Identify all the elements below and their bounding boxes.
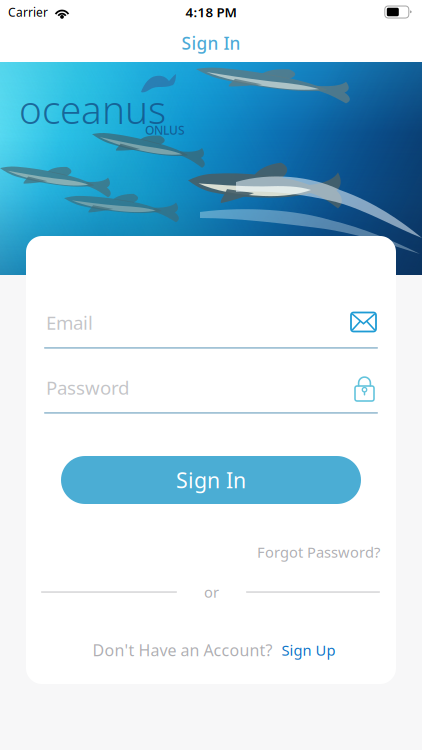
staticText: Forgot Password? <box>257 542 380 562</box>
staticText: Sign Up <box>281 640 335 660</box>
staticText: Password <box>46 375 129 400</box>
staticText: Sign In <box>176 466 246 494</box>
staticText: Email <box>46 310 93 335</box>
staticText: Sign In <box>181 31 240 54</box>
button[interactable]: Sign In <box>0 24 422 62</box>
staticText: ONLUS <box>145 122 185 138</box>
staticText: 4:18 PM <box>185 3 236 21</box>
staticText: Don't Have an Account? <box>92 639 272 661</box>
staticText: or <box>204 582 219 602</box>
button[interactable]: Sign In <box>61 456 361 504</box>
button[interactable]: Forgot Password? <box>41 542 380 562</box>
staticText: Carrier <box>8 4 48 20</box>
staticText: oceanus <box>19 83 166 135</box>
button[interactable]: Sign Up <box>281 640 335 660</box>
